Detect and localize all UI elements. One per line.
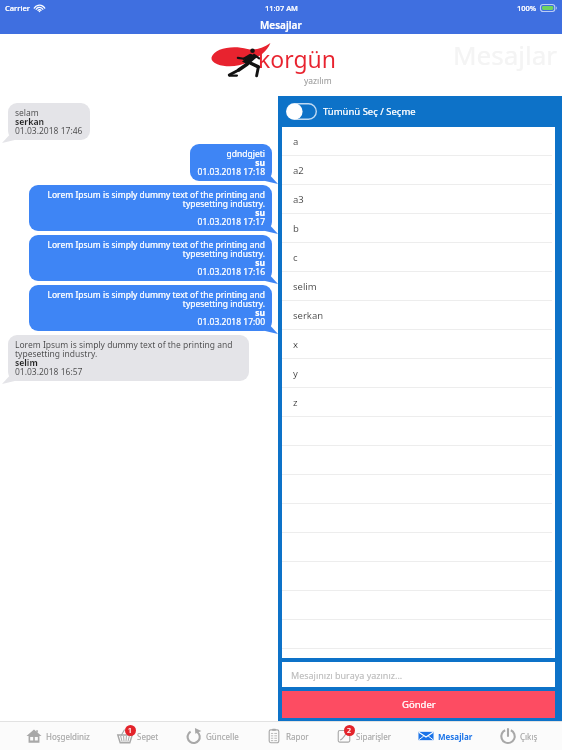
staticText: Lorem Ipsum is simply dummy text of the … bbox=[15, 339, 242, 378]
staticText: x bbox=[293, 338, 299, 351]
button[interactable]: Lorem Ipsum is simply dummy text of the … bbox=[29, 185, 272, 231]
button[interactable]: Güncelle bbox=[183, 726, 240, 746]
staticText: a bbox=[293, 135, 299, 148]
button[interactable]: selam serkan 01.03.2018 17:46 bbox=[8, 103, 90, 140]
button[interactable]: Tümünü Seç / Seçme bbox=[282, 99, 555, 124]
button[interactable]: Rapor bbox=[263, 726, 310, 746]
button[interactable]: gdndgjeti su 01.03.2018 17:18 bbox=[190, 144, 272, 181]
staticText: Siparişler bbox=[356, 731, 391, 742]
staticText: Lorem Ipsum is simply dummy text of the … bbox=[36, 239, 265, 278]
staticText: 1 bbox=[128, 726, 133, 736]
staticText: a2 bbox=[293, 164, 304, 177]
button[interactable]: x bbox=[282, 330, 555, 358]
other: Sepet bbox=[117, 728, 133, 744]
staticText: Tümünü Seç / Seçme bbox=[323, 105, 416, 118]
button[interactable]: Mesajınızı buraya yazınız... bbox=[282, 662, 555, 687]
button[interactable]: Mesajlar bbox=[415, 726, 474, 746]
staticText: 2 bbox=[347, 726, 352, 736]
staticText: Mesajlar bbox=[260, 18, 302, 32]
button[interactable]: y bbox=[282, 359, 555, 387]
staticText: Gönder bbox=[402, 698, 436, 711]
other: Rapor bbox=[266, 728, 282, 744]
other: Güncelle bbox=[186, 728, 202, 744]
staticText: Lorem Ipsum is simply dummy text of the … bbox=[36, 189, 265, 228]
button[interactable]: Lorem Ipsum is simply dummy text of the … bbox=[29, 235, 272, 281]
staticText: Mesajlar bbox=[453, 37, 558, 72]
staticText: Carrier bbox=[5, 3, 30, 13]
staticText: Hoşgeldiniz bbox=[46, 731, 90, 742]
other: Mesajlar bbox=[418, 728, 434, 744]
button[interactable]: a2 bbox=[282, 156, 555, 184]
other: Siparişler bbox=[336, 728, 352, 744]
staticText: y bbox=[293, 367, 298, 380]
button[interactable]: Hoşgeldiniz bbox=[23, 726, 91, 746]
button[interactable]: a3 bbox=[282, 185, 555, 213]
staticText: c bbox=[293, 251, 298, 264]
staticText: Güncelle bbox=[206, 731, 239, 742]
button[interactable]: c bbox=[282, 243, 555, 271]
button[interactable]: Çıkış bbox=[497, 726, 539, 746]
staticText: a3 bbox=[293, 193, 304, 206]
staticText: 11:07 AM bbox=[265, 3, 298, 13]
button[interactable]: Lorem Ipsum is simply dummy text of the … bbox=[29, 285, 272, 331]
button[interactable]: Sepet bbox=[114, 726, 160, 746]
button[interactable]: a bbox=[282, 127, 555, 155]
staticText: Mesajınızı buraya yazınız... bbox=[291, 669, 403, 681]
staticText: yazılım bbox=[304, 75, 332, 87]
button[interactable]: Lorem Ipsum is simply dummy text of the … bbox=[8, 335, 249, 381]
button[interactable]: Gönder bbox=[282, 691, 555, 718]
staticText: Çıkış bbox=[520, 731, 538, 742]
staticText: korgün bbox=[258, 43, 337, 74]
staticText: Mesajlar bbox=[438, 731, 473, 742]
other: Çıkış bbox=[500, 728, 516, 744]
staticText: selim bbox=[293, 280, 317, 293]
staticText: selam serkan 01.03.2018 17:46 bbox=[15, 107, 83, 137]
staticText: gdndgjeti su 01.03.2018 17:18 bbox=[197, 148, 265, 178]
staticText: Rapor bbox=[286, 731, 309, 742]
other: Hoşgeldiniz bbox=[26, 728, 42, 744]
staticText: z bbox=[293, 396, 298, 409]
staticText: 100% bbox=[517, 3, 537, 13]
button[interactable]: b bbox=[282, 214, 555, 242]
staticText: serkan bbox=[293, 309, 324, 322]
staticText: Sepet bbox=[137, 731, 159, 742]
staticText: b bbox=[293, 222, 299, 235]
button[interactable]: z bbox=[282, 388, 555, 416]
button[interactable]: Siparişler bbox=[333, 726, 392, 746]
staticText: Lorem Ipsum is simply dummy text of the … bbox=[36, 289, 265, 328]
button[interactable]: selim bbox=[282, 272, 555, 300]
button[interactable]: serkan bbox=[282, 301, 555, 329]
